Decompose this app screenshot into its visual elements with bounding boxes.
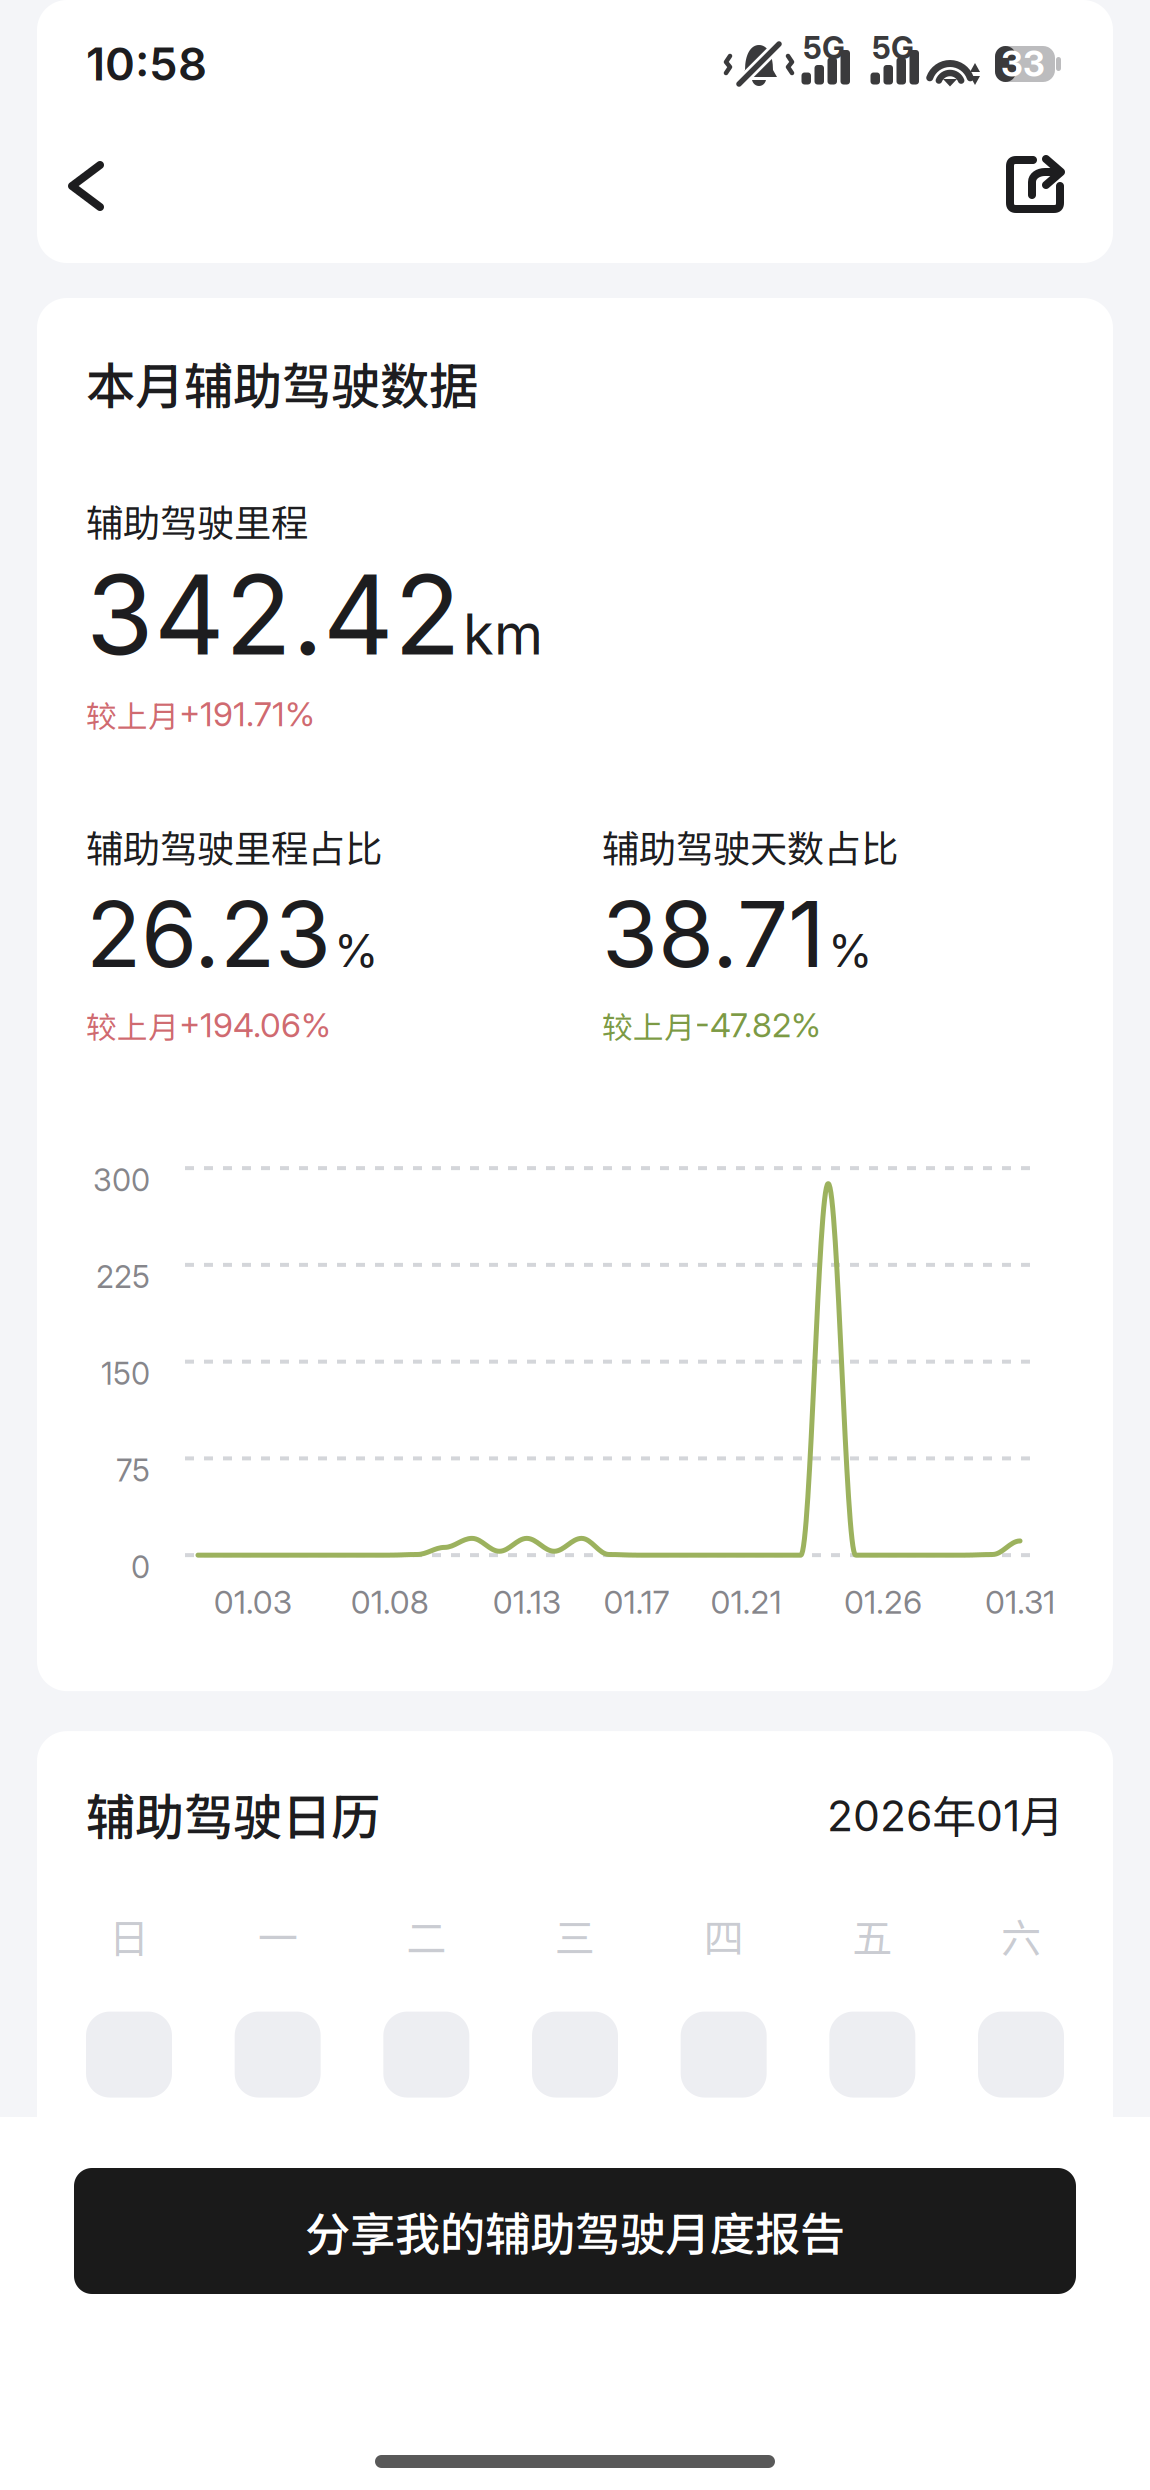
staticText: 5G [872, 29, 914, 66]
staticText: 一 [258, 1907, 298, 1964]
staticText: 38.71 [602, 879, 825, 989]
staticText: 5G [803, 29, 845, 66]
staticText: % [828, 923, 873, 978]
staticText: 01.03 [214, 1583, 292, 1621]
staticText: 本月辅助驾驶数据 [86, 347, 478, 418]
staticText: % [334, 923, 379, 978]
button[interactable]: Share [988, 120, 1064, 232]
staticText: 150 [101, 1355, 150, 1392]
staticText: 01.26 [844, 1583, 922, 1621]
staticText: 2026年01月 [827, 1783, 1064, 1845]
staticText: 01.31 [985, 1583, 1055, 1621]
staticText: 较上月+194.06% [86, 1004, 331, 1047]
staticText: 较上月+191.71% [86, 693, 315, 736]
staticText: 01.13 [493, 1583, 561, 1621]
staticText: 分享我的辅助驾驶月度报告 [305, 2198, 845, 2264]
staticText: 01.21 [710, 1583, 781, 1621]
staticText: 342.42 [86, 548, 461, 681]
staticText: 26.23 [86, 879, 331, 989]
staticText: km [463, 600, 543, 668]
staticText: 辅助驾驶日历 [86, 1778, 380, 1849]
staticText: 辅助驾驶里程占比 [86, 819, 382, 873]
staticText: 日 [109, 1907, 149, 1964]
staticText: 01.17 [603, 1583, 669, 1621]
staticText: 33 [1001, 43, 1045, 85]
staticText: 225 [96, 1258, 150, 1295]
button[interactable]: Back [67, 118, 143, 234]
staticText: 四 [704, 1907, 744, 1964]
staticText: 较上月-47.82% [602, 1004, 821, 1047]
staticText: 二 [406, 1907, 446, 1964]
staticText: 六 [1001, 1907, 1041, 1964]
staticText: 辅助驾驶里程 [86, 493, 308, 547]
staticText: 10:58 [86, 37, 207, 91]
button[interactable]: 分享我的辅助驾驶月度报告 [74, 2168, 1076, 2294]
staticText: 五 [852, 1907, 892, 1964]
staticText: 三 [555, 1907, 595, 1964]
staticText: 75 [116, 1452, 150, 1489]
staticText: 0 [131, 1549, 150, 1586]
staticText: 01.08 [351, 1583, 429, 1621]
staticText: 300 [93, 1162, 150, 1199]
staticText: 辅助驾驶天数占比 [602, 819, 898, 873]
